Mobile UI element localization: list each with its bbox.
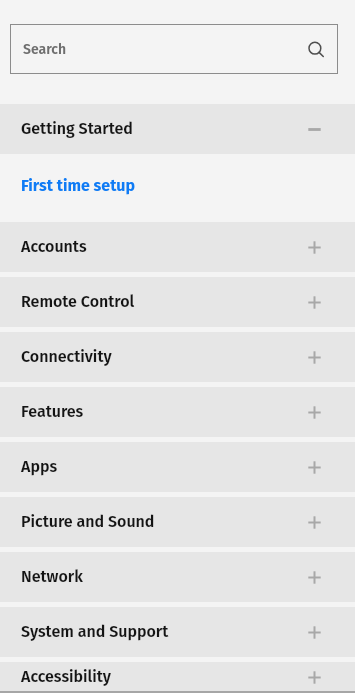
other: Collapse bbox=[308, 123, 321, 136]
other: Search bbox=[302, 39, 322, 59]
other: Expand bbox=[308, 516, 321, 529]
button[interactable]: System and Support bbox=[0, 607, 355, 657]
staticText: Features bbox=[21, 402, 84, 421]
staticText: Accessibility bbox=[21, 667, 112, 686]
staticText: System and Support bbox=[21, 622, 169, 641]
staticText: Connectivity bbox=[21, 347, 112, 366]
other: Expand bbox=[308, 571, 321, 584]
other: Expand bbox=[308, 406, 321, 419]
button[interactable]: Accounts bbox=[0, 222, 355, 272]
button[interactable]: Picture and Sound bbox=[0, 497, 355, 547]
button[interactable]: First time setup bbox=[0, 154, 355, 222]
button[interactable]: Connectivity bbox=[0, 332, 355, 382]
staticText: Apps bbox=[21, 457, 58, 476]
button[interactable]: Remote Control bbox=[0, 277, 355, 327]
other: Expand bbox=[308, 626, 321, 639]
button[interactable]: Apps bbox=[0, 442, 355, 492]
staticText: Network bbox=[21, 567, 83, 586]
button[interactable]: Network bbox=[0, 552, 355, 602]
button[interactable]: Features bbox=[0, 387, 355, 437]
staticText: Picture and Sound bbox=[21, 512, 155, 531]
staticText: First time setup bbox=[21, 176, 136, 195]
staticText: Getting Started bbox=[21, 119, 133, 138]
other: Expand bbox=[308, 461, 321, 474]
button[interactable]: Accessibility bbox=[0, 662, 355, 693]
staticText: Accounts bbox=[21, 237, 87, 256]
other: Expand bbox=[308, 671, 321, 684]
staticText: Remote Control bbox=[21, 292, 135, 311]
other: Expand bbox=[308, 351, 321, 364]
other: Expand bbox=[308, 296, 321, 309]
button[interactable]: Search bbox=[10, 24, 338, 74]
button[interactable]: Getting Started bbox=[0, 104, 355, 154]
staticText: Search bbox=[23, 41, 67, 58]
other: Expand bbox=[308, 241, 321, 254]
